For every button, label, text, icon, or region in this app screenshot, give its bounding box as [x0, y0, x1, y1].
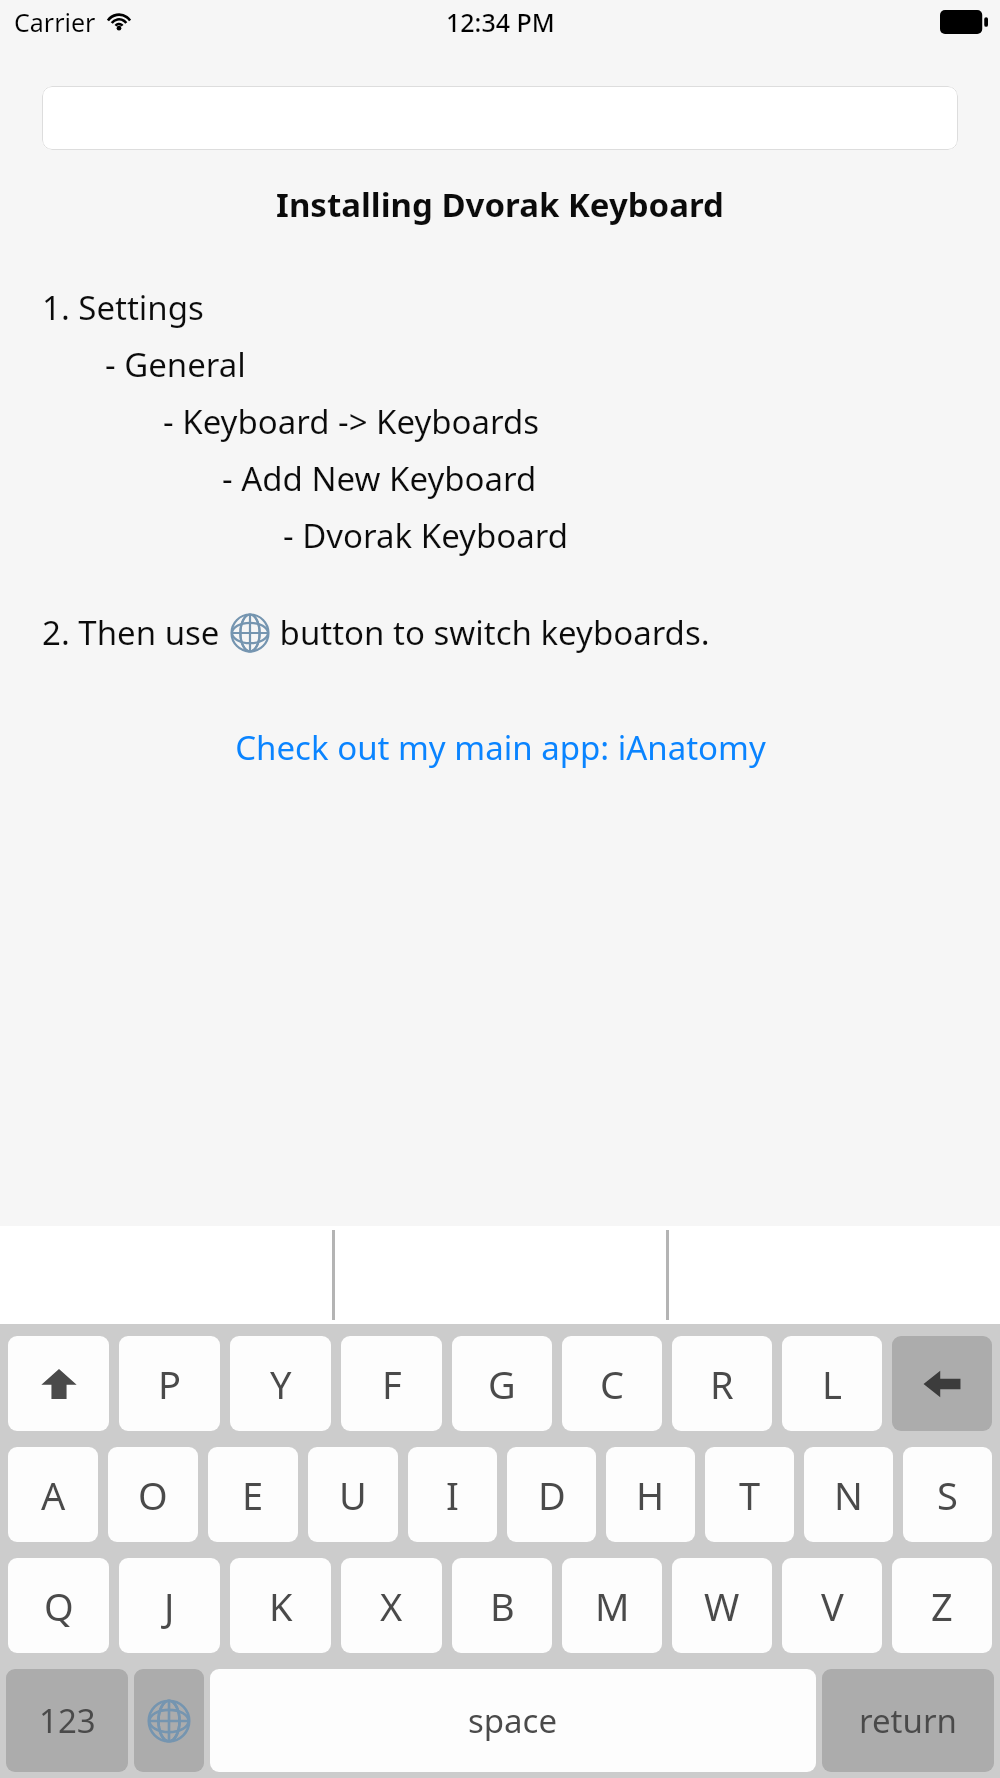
staticText: - Add New Keyboard: [222, 456, 537, 501]
staticText: button to switch keyboards.: [271, 610, 710, 655]
button[interactable]: [42, 86, 958, 150]
staticText: - Keyboard -> Keyboards: [163, 399, 540, 444]
button[interactable]: Q: [8, 1558, 109, 1653]
staticText: K: [269, 1580, 293, 1632]
button[interactable]: H: [606, 1447, 695, 1542]
staticText: H: [636, 1469, 665, 1521]
button[interactable]: 123: [6, 1669, 128, 1772]
staticText: A: [41, 1469, 66, 1521]
staticText: R: [710, 1358, 734, 1410]
button[interactable]: M: [562, 1558, 662, 1653]
button[interactable]: I: [408, 1447, 497, 1542]
staticText: I: [446, 1469, 459, 1521]
staticText: U: [339, 1469, 367, 1521]
staticText: Installing Dvorak Keyboard: [0, 182, 1000, 227]
staticText: S: [937, 1469, 958, 1521]
button[interactable]: E: [208, 1447, 298, 1542]
staticText: M: [595, 1580, 630, 1632]
staticText: 12:34 PM: [446, 5, 555, 39]
button[interactable]: Switch keyboard: [134, 1669, 204, 1772]
button[interactable]: P: [119, 1336, 220, 1431]
button[interactable]: O: [108, 1447, 198, 1542]
button[interactable]: Shift: [8, 1336, 109, 1431]
button[interactable]: R: [672, 1336, 772, 1431]
button[interactable]: F: [341, 1336, 442, 1431]
button[interactable]: space: [210, 1669, 816, 1772]
button[interactable]: Y: [230, 1336, 331, 1431]
staticText: D: [538, 1469, 566, 1521]
button[interactable]: return: [822, 1669, 994, 1772]
staticText: Y: [270, 1358, 292, 1410]
staticText: O: [138, 1469, 168, 1521]
button[interactable]: L: [782, 1336, 882, 1431]
staticText: Z: [931, 1580, 953, 1632]
staticText: F: [382, 1358, 402, 1410]
button[interactable]: Z: [892, 1558, 992, 1653]
staticText: space: [468, 1698, 558, 1743]
button[interactable]: N: [804, 1447, 893, 1542]
staticText: 1. Settings: [42, 285, 204, 330]
button[interactable]: A: [8, 1447, 98, 1542]
staticText: G: [488, 1358, 516, 1410]
button[interactable]: X: [341, 1558, 442, 1653]
staticText: - General: [105, 342, 246, 387]
button[interactable]: Check out my main app: iAnatomy: [0, 725, 1000, 770]
staticText: W: [704, 1580, 740, 1632]
staticText: C: [600, 1358, 625, 1410]
staticText: L: [822, 1358, 842, 1410]
button[interactable]: K: [230, 1558, 331, 1653]
staticText: Check out my main app: iAnatomy: [235, 725, 766, 770]
staticText: 123: [39, 1698, 96, 1743]
button[interactable]: T: [705, 1447, 794, 1542]
staticText: B: [490, 1580, 515, 1632]
staticText: X: [380, 1580, 403, 1632]
button[interactable]: Backspace: [892, 1336, 992, 1431]
button[interactable]: G: [452, 1336, 552, 1431]
button[interactable]: W: [672, 1558, 772, 1653]
button[interactable]: C: [562, 1336, 662, 1431]
button[interactable]: J: [119, 1558, 220, 1653]
staticText: N: [834, 1469, 863, 1521]
staticText: T: [739, 1469, 761, 1521]
staticText: return: [859, 1698, 957, 1743]
button[interactable]: D: [507, 1447, 596, 1542]
staticText: V: [821, 1580, 844, 1632]
staticText: - Dvorak Keyboard: [283, 513, 568, 558]
staticText: J: [164, 1580, 175, 1632]
staticText: Carrier: [14, 5, 96, 39]
staticText: 2. Then use: [42, 610, 229, 655]
button[interactable]: B: [452, 1558, 552, 1653]
button[interactable]: S: [903, 1447, 992, 1542]
staticText: Q: [44, 1580, 74, 1632]
staticText: E: [242, 1469, 264, 1521]
button[interactable]: U: [308, 1447, 398, 1542]
button[interactable]: V: [782, 1558, 882, 1653]
staticText: P: [158, 1358, 181, 1410]
